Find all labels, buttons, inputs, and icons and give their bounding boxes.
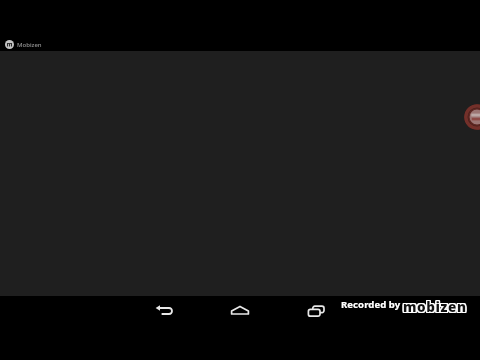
staticText: mobizen (402, 299, 466, 317)
staticText: mobizen (403, 298, 467, 316)
staticText: mobizen (404, 298, 468, 316)
staticText: Recorded by (341, 298, 401, 311)
staticText: mobizen (404, 299, 468, 317)
staticText: mobizen (402, 297, 466, 315)
staticText: mobizen (403, 299, 467, 317)
button[interactable]: Home (230, 300, 250, 320)
staticText: mobizen (402, 298, 466, 316)
button[interactable]: Mobizen record button (464, 104, 480, 130)
button[interactable]: Recent apps (306, 301, 326, 321)
button[interactable]: Mobizen (402, 297, 470, 315)
staticText: mobizen (403, 297, 467, 315)
staticText: mobizen (404, 297, 468, 315)
staticText: Mobizen (17, 41, 42, 49)
button[interactable]: Back (154, 300, 174, 320)
